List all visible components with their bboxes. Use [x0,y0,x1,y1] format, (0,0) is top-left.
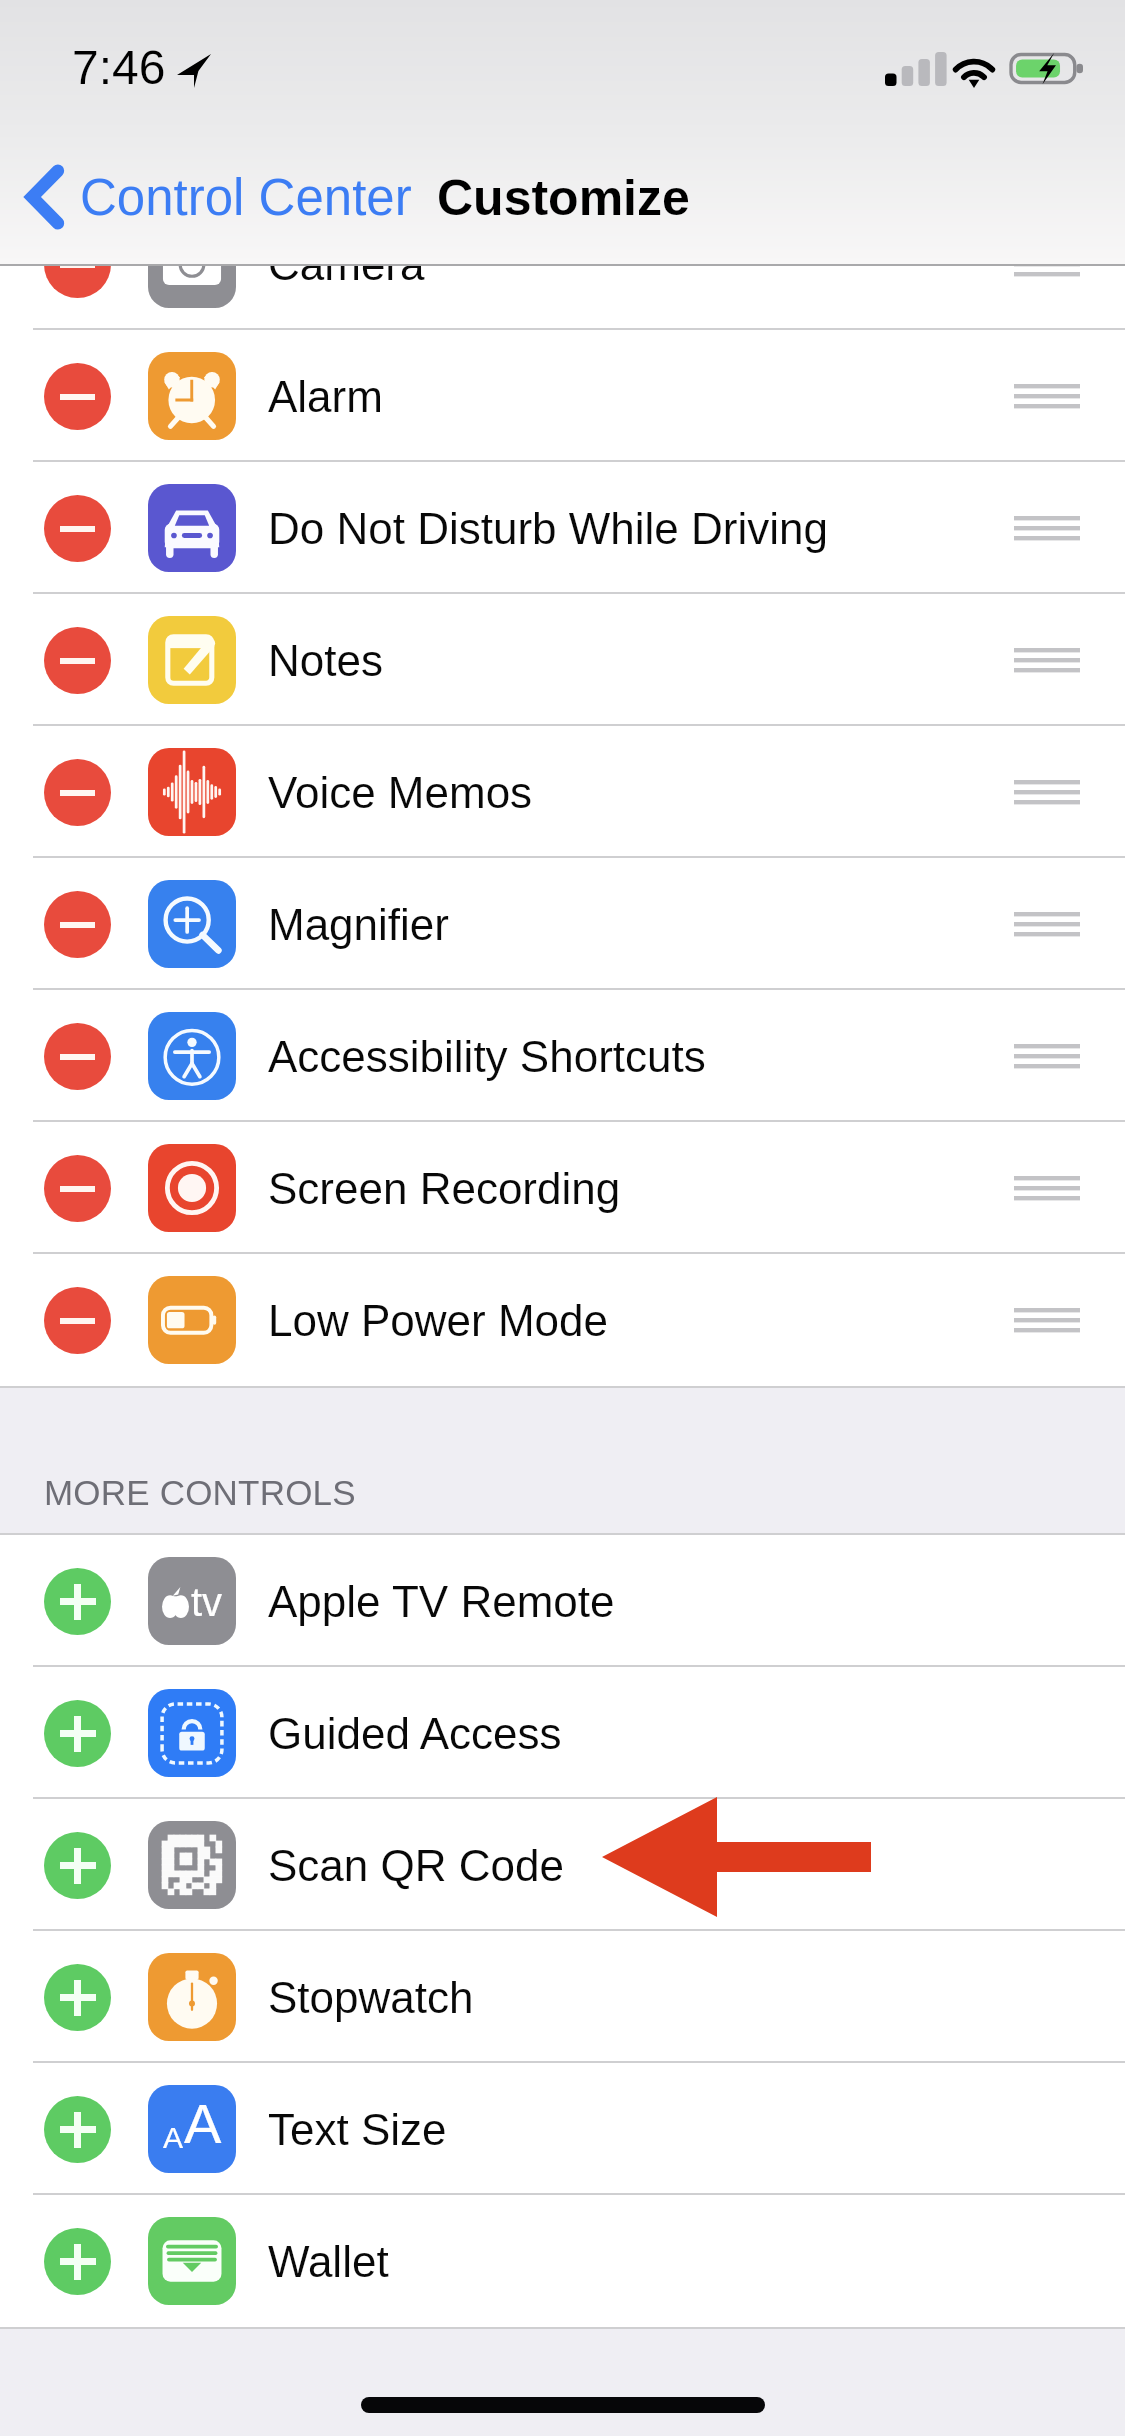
button[interactable]: Remove Low Power Mode [0,1254,1125,1386]
button[interactable]: Add Stopwatch [0,1931,1125,2063]
button[interactable]: Remove Voice Memos [0,726,1125,858]
staticText: Low Power Mode [268,1296,608,1345]
button[interactable]: Remove Magnifier [0,858,1125,990]
staticText: Control Center [80,169,412,226]
button[interactable]: Remove Accessibility Shortcuts [0,990,1125,1122]
other: Remove Voice Memos [44,759,111,826]
button[interactable]: Remove Camera [0,198,1125,330]
staticText: Scan QR Code [268,1841,564,1890]
staticText: A [163,2121,184,2155]
staticText: Guided Access [268,1709,562,1758]
staticText: Stopwatch [268,1973,474,2022]
other: Add Apple TV Remote [44,1568,111,1635]
other: Add Scan QR Code [44,1832,111,1899]
button[interactable]: Remove Screen Recording [0,1122,1125,1254]
staticText: MORE CONTROLS [44,1473,356,1512]
other: Add Stopwatch [44,1964,111,2031]
other: Remove Screen Recording [44,1155,111,1222]
button[interactable]: Control Center [26,165,412,229]
staticText: Alarm [268,372,383,421]
other: Add Wallet [44,2228,111,2295]
staticText: Wallet [268,2237,389,2286]
staticText: Notes [268,636,383,685]
staticText: A [184,2092,222,2155]
other: Remove Do Not Disturb While Driving [44,495,111,562]
staticText: Text Size [268,2105,447,2154]
staticText: Camera [268,240,425,289]
other: Remove Magnifier [44,891,111,958]
other: Remove Accessibility Shortcuts [44,1023,111,1090]
button[interactable]: Remove Alarm [0,330,1125,462]
staticText: Do Not Disturb While Driving [268,504,828,553]
button[interactable]: Add Apple TV Remote [0,1535,1125,1667]
staticText: Voice Memos [268,768,533,817]
staticText: tv [191,1580,223,1625]
button[interactable]: Add Text Size [0,2063,1125,2195]
other: Remove Alarm [44,363,111,430]
staticText: 7:46 [72,41,166,95]
staticText: Magnifier [268,900,449,949]
staticText: Accessibility Shortcuts [268,1032,706,1081]
button[interactable]: Add Guided Access [0,1667,1125,1799]
staticText: Customize [437,170,690,226]
button[interactable]: Remove Do Not Disturb While Driving [0,462,1125,594]
other: Remove Low Power Mode [44,1287,111,1354]
other: Remove Notes [44,627,111,694]
other: Add Text Size [44,2096,111,2163]
staticText: Apple TV Remote [268,1577,615,1626]
button[interactable]: Add Wallet [0,2195,1125,2327]
other: Remove Camera [44,231,111,298]
other: Add Guided Access [44,1700,111,1767]
button[interactable]: Remove Notes [0,594,1125,726]
button[interactable]: Add Scan QR Code [0,1799,1125,1931]
staticText: Screen Recording [268,1164,621,1213]
